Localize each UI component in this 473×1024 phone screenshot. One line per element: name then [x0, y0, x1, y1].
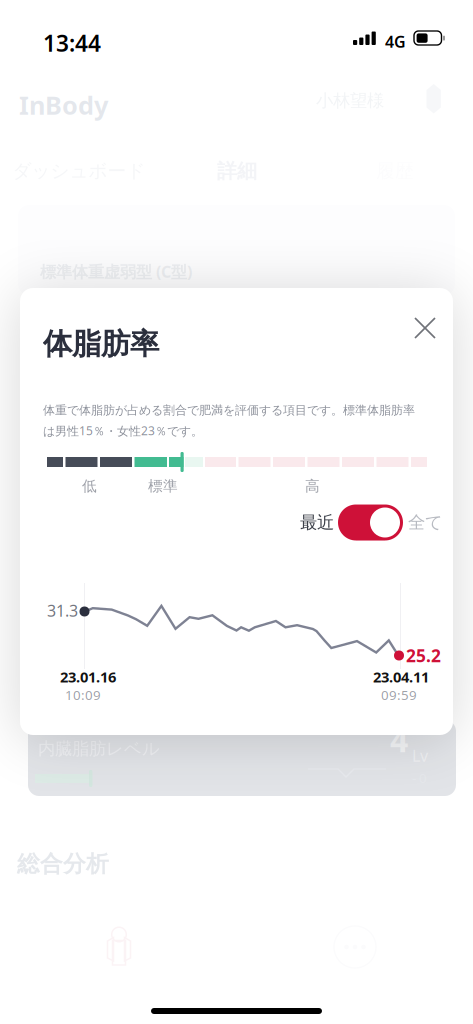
button[interactable]: その他 — [0, 0, 473, 1024]
staticText: 4G — [385, 31, 406, 52]
staticText: 全て — [408, 512, 443, 533]
staticText: 内臓脂肪レベル — [38, 738, 160, 759]
button[interactable]: 詳細 — [0, 0, 473, 1024]
staticText: 23.01.16 — [60, 667, 116, 686]
staticText: 総合分析 — [17, 850, 109, 878]
staticText: 最近 — [300, 512, 334, 533]
staticText: 13:44 — [43, 28, 101, 58]
staticText: 高 — [305, 477, 320, 495]
button[interactable]: 履歴 — [0, 0, 473, 1024]
button[interactable]: 体組成 — [0, 0, 473, 1024]
staticText: InBody — [19, 88, 108, 122]
staticText: 10:09 — [65, 686, 101, 704]
staticText: は男性15％・女性23％です。 — [43, 423, 203, 439]
button[interactable]: 最近 — [0, 0, 473, 1024]
staticText: 体重で体脂肪が占める割合で肥満を評価する項目です。標準体脂肪率 — [43, 403, 415, 418]
staticText: 低 — [82, 477, 97, 495]
staticText: 体脂肪率 — [43, 326, 159, 362]
staticText: 詳細 — [217, 159, 257, 183]
staticText: 標準 — [148, 477, 178, 495]
staticText: Lv — [412, 745, 428, 766]
staticText: 09:59 — [381, 686, 417, 704]
staticText: 25.2 — [406, 644, 441, 667]
button[interactable]: ダッシュボード — [0, 0, 473, 1024]
staticText: 4 — [390, 718, 408, 761]
staticText: 小林望様 — [316, 90, 384, 111]
staticText: 標準体重虚弱型 (C型) — [40, 261, 192, 282]
staticText: 31.3 — [47, 600, 78, 621]
button[interactable]: お知らせ — [0, 0, 473, 1024]
staticText: 23.04.11 — [373, 667, 429, 686]
button[interactable]: 閉じる — [0, 0, 473, 1024]
